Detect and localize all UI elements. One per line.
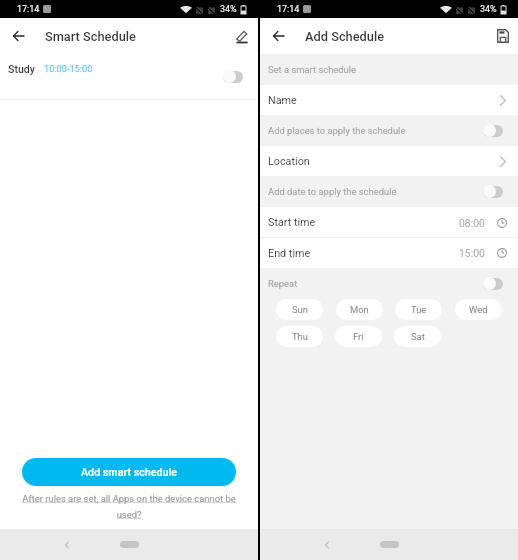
staticText: 10:00-15:00 (44, 63, 93, 74)
staticText: Start time (268, 216, 316, 229)
button[interactable]: Thu (276, 326, 323, 347)
staticText: 15:00 (459, 247, 485, 259)
button[interactable]: Start time (260, 207, 518, 238)
staticText: Sun (292, 304, 308, 315)
staticText: End time (268, 247, 311, 260)
staticText: Sat (411, 331, 425, 342)
button[interactable]: Mon (336, 299, 383, 320)
button[interactable]: Name (260, 85, 518, 115)
button[interactable]: Study (0, 54, 258, 99)
staticText: Set a smart schedule (268, 64, 357, 75)
staticText: 34% (220, 4, 237, 15)
button[interactable]: Tue (395, 299, 442, 320)
button[interactable]: Back (7, 25, 29, 47)
staticText: Tue (411, 304, 427, 315)
staticText: Wed (469, 304, 488, 315)
button[interactable]: End time (260, 238, 518, 268)
staticText: Add Schedule (305, 29, 385, 44)
button[interactable]: Location (260, 146, 518, 176)
button[interactable]: Edit (230, 25, 252, 47)
button[interactable]: Sun (276, 299, 323, 320)
button[interactable]: Add places to apply the schedule (260, 115, 518, 146)
staticText: 17:14 (17, 4, 40, 15)
staticText: 08:00 (459, 217, 485, 229)
button[interactable]: Home (380, 541, 399, 548)
button[interactable]: Sat (394, 326, 441, 347)
staticText: Add date to apply the schedule (268, 186, 397, 197)
staticText: Repeat (268, 278, 298, 289)
button[interactable]: Fri (335, 326, 382, 347)
button[interactable]: Home (120, 541, 139, 548)
staticText: Name (268, 94, 297, 107)
button[interactable]: Add smart schedule (22, 458, 236, 486)
staticText: Thu (292, 331, 308, 342)
staticText: Fri (353, 331, 364, 342)
staticText: Location (268, 155, 310, 168)
staticText: Add smart schedule (81, 466, 177, 479)
button[interactable]: Back (62, 540, 72, 550)
staticText: Add places to apply the schedule (268, 125, 406, 136)
staticText: 34% (480, 4, 497, 15)
button[interactable]: Back (322, 540, 332, 550)
staticText: Smart Schedule (45, 29, 136, 44)
button[interactable]: Add date to apply the schedule (260, 176, 518, 207)
button[interactable]: Wed (455, 299, 502, 320)
staticText: Study (8, 63, 35, 75)
button[interactable]: Save (492, 25, 514, 47)
staticText: 17:14 (277, 4, 300, 15)
button[interactable]: After rules are set, all Apps on the dev… (16, 493, 242, 520)
button[interactable]: Repeat (260, 268, 518, 299)
staticText: Mon (350, 304, 369, 315)
button[interactable]: Back (267, 25, 289, 47)
